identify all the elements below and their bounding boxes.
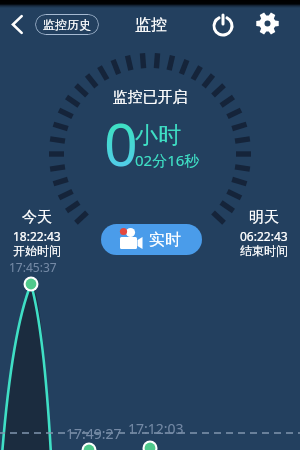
staticText: 17:49:27: [66, 424, 122, 443]
staticText: 小时: [135, 121, 181, 150]
staticText: 监控: [135, 15, 167, 35]
staticText: 监控历史: [43, 17, 91, 32]
staticText: 06:22:43: [240, 228, 288, 244]
button[interactable]: 实时: [101, 224, 202, 255]
staticText: 今天: [22, 208, 52, 227]
button[interactable]: Power: [206, 7, 239, 40]
button[interactable]: 监控历史: [35, 14, 99, 35]
staticText: 17:45:37: [9, 259, 57, 275]
staticText: 17:12:03: [128, 419, 184, 438]
staticText: 开始时间: [13, 243, 61, 258]
staticText: 0: [104, 103, 138, 183]
staticText: 实时: [149, 230, 181, 250]
button[interactable]: Back: [3, 10, 32, 39]
staticText: 监控已开启: [0, 88, 300, 107]
staticText: 02分16秒: [135, 150, 200, 170]
button[interactable]: Settings: [251, 7, 284, 40]
staticText: 18:22:43: [13, 228, 61, 244]
staticText: 明天: [249, 208, 279, 227]
staticText: 结束时间: [240, 243, 288, 258]
